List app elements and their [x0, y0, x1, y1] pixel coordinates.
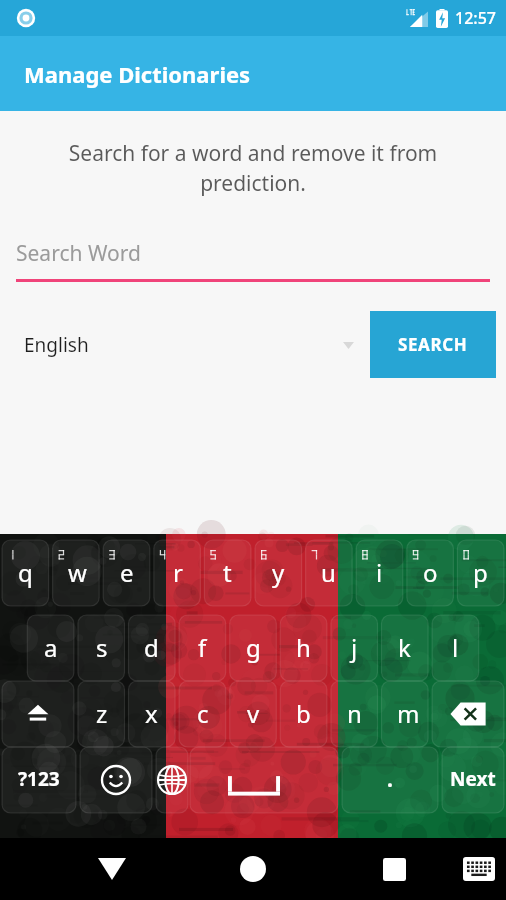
staticText: English — [24, 332, 89, 358]
staticText: w — [68, 556, 83, 589]
button[interactable]: g — [246, 631, 261, 664]
button[interactable]: Search Word — [16, 239, 490, 282]
button[interactable]: Home — [223, 838, 283, 900]
staticText: t — [223, 556, 232, 589]
button[interactable]: . — [383, 765, 396, 794]
staticText: b — [296, 697, 311, 730]
staticText: o — [423, 556, 438, 589]
staticText: Search Word — [16, 239, 141, 268]
button[interactable]: f — [195, 631, 210, 664]
staticText: Manage Dictionaries — [24, 59, 251, 89]
button[interactable]: ?123 — [15, 766, 62, 792]
button[interactable]: k — [397, 631, 412, 664]
staticText: x — [145, 697, 158, 730]
staticText: ?123 — [18, 766, 60, 792]
staticText: r — [173, 556, 183, 589]
button[interactable]: English — [0, 332, 370, 358]
staticText: Next — [450, 766, 496, 792]
staticText: z — [96, 697, 108, 730]
button[interactable]: c — [195, 697, 210, 730]
staticText: k — [398, 631, 411, 664]
button[interactable]: s — [94, 631, 109, 664]
button[interactable]: m — [397, 697, 412, 730]
staticText: i — [376, 556, 383, 589]
staticText: a — [44, 631, 58, 664]
staticText: f — [198, 631, 207, 664]
staticText: u — [321, 556, 336, 589]
staticText: n — [347, 697, 362, 730]
button[interactable]: j — [347, 631, 362, 664]
button[interactable]: v — [246, 697, 261, 730]
button[interactable]: u — [321, 556, 336, 589]
button[interactable]: r — [170, 556, 185, 589]
staticText: g — [246, 631, 261, 664]
button[interactable]: Next — [449, 766, 496, 792]
button[interactable]: q — [18, 556, 33, 589]
staticText: y — [272, 556, 285, 589]
button[interactable]: e — [119, 556, 134, 589]
button[interactable]: x — [144, 697, 159, 730]
button[interactable]: h — [296, 631, 311, 664]
button[interactable]: d — [144, 631, 159, 664]
staticText: h — [296, 631, 311, 664]
button[interactable]: p — [473, 556, 488, 589]
button[interactable]: a — [43, 631, 58, 664]
staticText: s — [96, 631, 108, 664]
staticText: c — [197, 697, 209, 730]
button[interactable]: Recent apps — [364, 838, 424, 900]
button[interactable]: SEARCH — [370, 311, 496, 378]
staticText: e — [120, 556, 134, 589]
staticText: p — [473, 556, 488, 589]
staticText: Search for a word and remove it from pre… — [36, 139, 470, 197]
button[interactable]: Switch keyboard — [452, 838, 506, 900]
button[interactable]: b — [296, 697, 311, 730]
staticText: j — [351, 631, 358, 664]
button[interactable]: z — [94, 697, 109, 730]
staticText: q — [18, 556, 33, 589]
button[interactable]: l — [448, 631, 463, 664]
button[interactable]: n — [347, 697, 362, 730]
button[interactable]: i — [372, 556, 387, 589]
staticText: v — [247, 697, 260, 730]
button[interactable]: o — [423, 556, 438, 589]
staticText: SEARCH — [398, 333, 468, 356]
staticText: d — [144, 631, 159, 664]
button[interactable]: t — [220, 556, 235, 589]
staticText: . — [387, 765, 393, 794]
button[interactable]: Hide keyboard — [82, 838, 142, 900]
button[interactable]: y — [271, 556, 286, 589]
button[interactable]: w — [68, 556, 83, 589]
staticText: m — [397, 697, 412, 730]
staticText: l — [452, 631, 459, 664]
staticText: 12:57 — [455, 7, 496, 29]
